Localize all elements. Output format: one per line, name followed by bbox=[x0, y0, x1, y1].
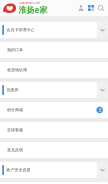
button[interactable]: 我的订单 bbox=[0, 42, 108, 58]
button[interactable]: 积分商城 bbox=[0, 102, 108, 118]
staticText: 意见反馈 bbox=[7, 147, 23, 152]
staticText: 淮扬e家 bbox=[18, 4, 47, 15]
button[interactable]: 收货地址簿 bbox=[0, 62, 108, 78]
staticText: 账户安全设置 bbox=[6, 167, 30, 172]
button[interactable]: Account bbox=[76, 3, 86, 13]
button[interactable]: 优惠券 bbox=[0, 82, 108, 98]
button[interactable]: Search bbox=[96, 3, 106, 13]
staticText: 积分商城 bbox=[7, 107, 23, 112]
button[interactable]: Scan QR code bbox=[86, 3, 96, 13]
staticText: HUAIYANG.COM bbox=[18, 1, 39, 4]
staticText: 在线客服 bbox=[7, 127, 23, 132]
staticText: 收货地址簿 bbox=[7, 67, 27, 72]
staticText: 我的订单 bbox=[7, 47, 23, 52]
staticText: 会员卡管理中心 bbox=[6, 27, 34, 32]
button[interactable]: 会员卡管理中心 bbox=[0, 22, 108, 38]
button[interactable]: 意见反馈 bbox=[0, 142, 108, 158]
staticText: 优惠券 bbox=[6, 87, 18, 92]
button[interactable]: 在线客服 bbox=[0, 122, 108, 138]
staticText: 3 bbox=[98, 106, 101, 114]
button[interactable]: 账户安全设置 bbox=[0, 162, 108, 178]
